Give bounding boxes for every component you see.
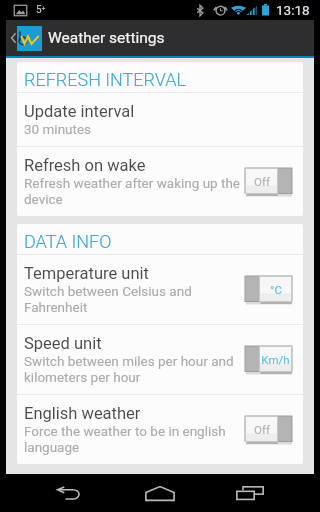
button[interactable]: Home [134, 474, 186, 512]
button[interactable]: Refresh on wake [17, 147, 303, 216]
staticText: 13:18 [276, 2, 310, 18]
button[interactable]: Back [45, 474, 95, 512]
staticText: Refresh on wake [24, 156, 146, 175]
button[interactable]: English weather [17, 395, 303, 464]
button[interactable]: Update interval [17, 93, 303, 146]
staticText: Off [254, 423, 270, 436]
staticText: Switch between Celsius and Fahrenheit [24, 283, 241, 315]
staticText: Km/h [261, 353, 290, 366]
staticText: 5⁺ [36, 4, 46, 16]
staticText: Temperature unit [24, 264, 149, 283]
button[interactable]: °C [245, 276, 292, 304]
staticText: REFRESH INTERVAL [24, 69, 187, 90]
button[interactable]: Temperature unit [17, 255, 303, 324]
staticText: Force the weather to be in english langu… [24, 423, 241, 455]
staticText: Switch between miles per hour and kilome… [24, 353, 241, 385]
button[interactable]: Km/h [245, 346, 292, 374]
staticText: Refresh weather after waking up the devi… [24, 175, 241, 207]
button[interactable]: Off [245, 168, 292, 196]
button[interactable]: Speed unit [17, 325, 303, 394]
staticText: Update interval [24, 102, 135, 121]
staticText: 30 minutes [24, 121, 92, 137]
staticText: English weather [24, 404, 141, 423]
staticText: Off [254, 175, 270, 188]
button[interactable]: Navigate up [6, 20, 43, 56]
button[interactable]: Recent apps [225, 474, 275, 512]
staticText: DATA INFO [24, 231, 112, 252]
staticText: Weather settings [48, 29, 165, 47]
staticText: °C [270, 283, 282, 296]
button[interactable]: Off [245, 416, 292, 444]
staticText: Speed unit [24, 334, 102, 353]
